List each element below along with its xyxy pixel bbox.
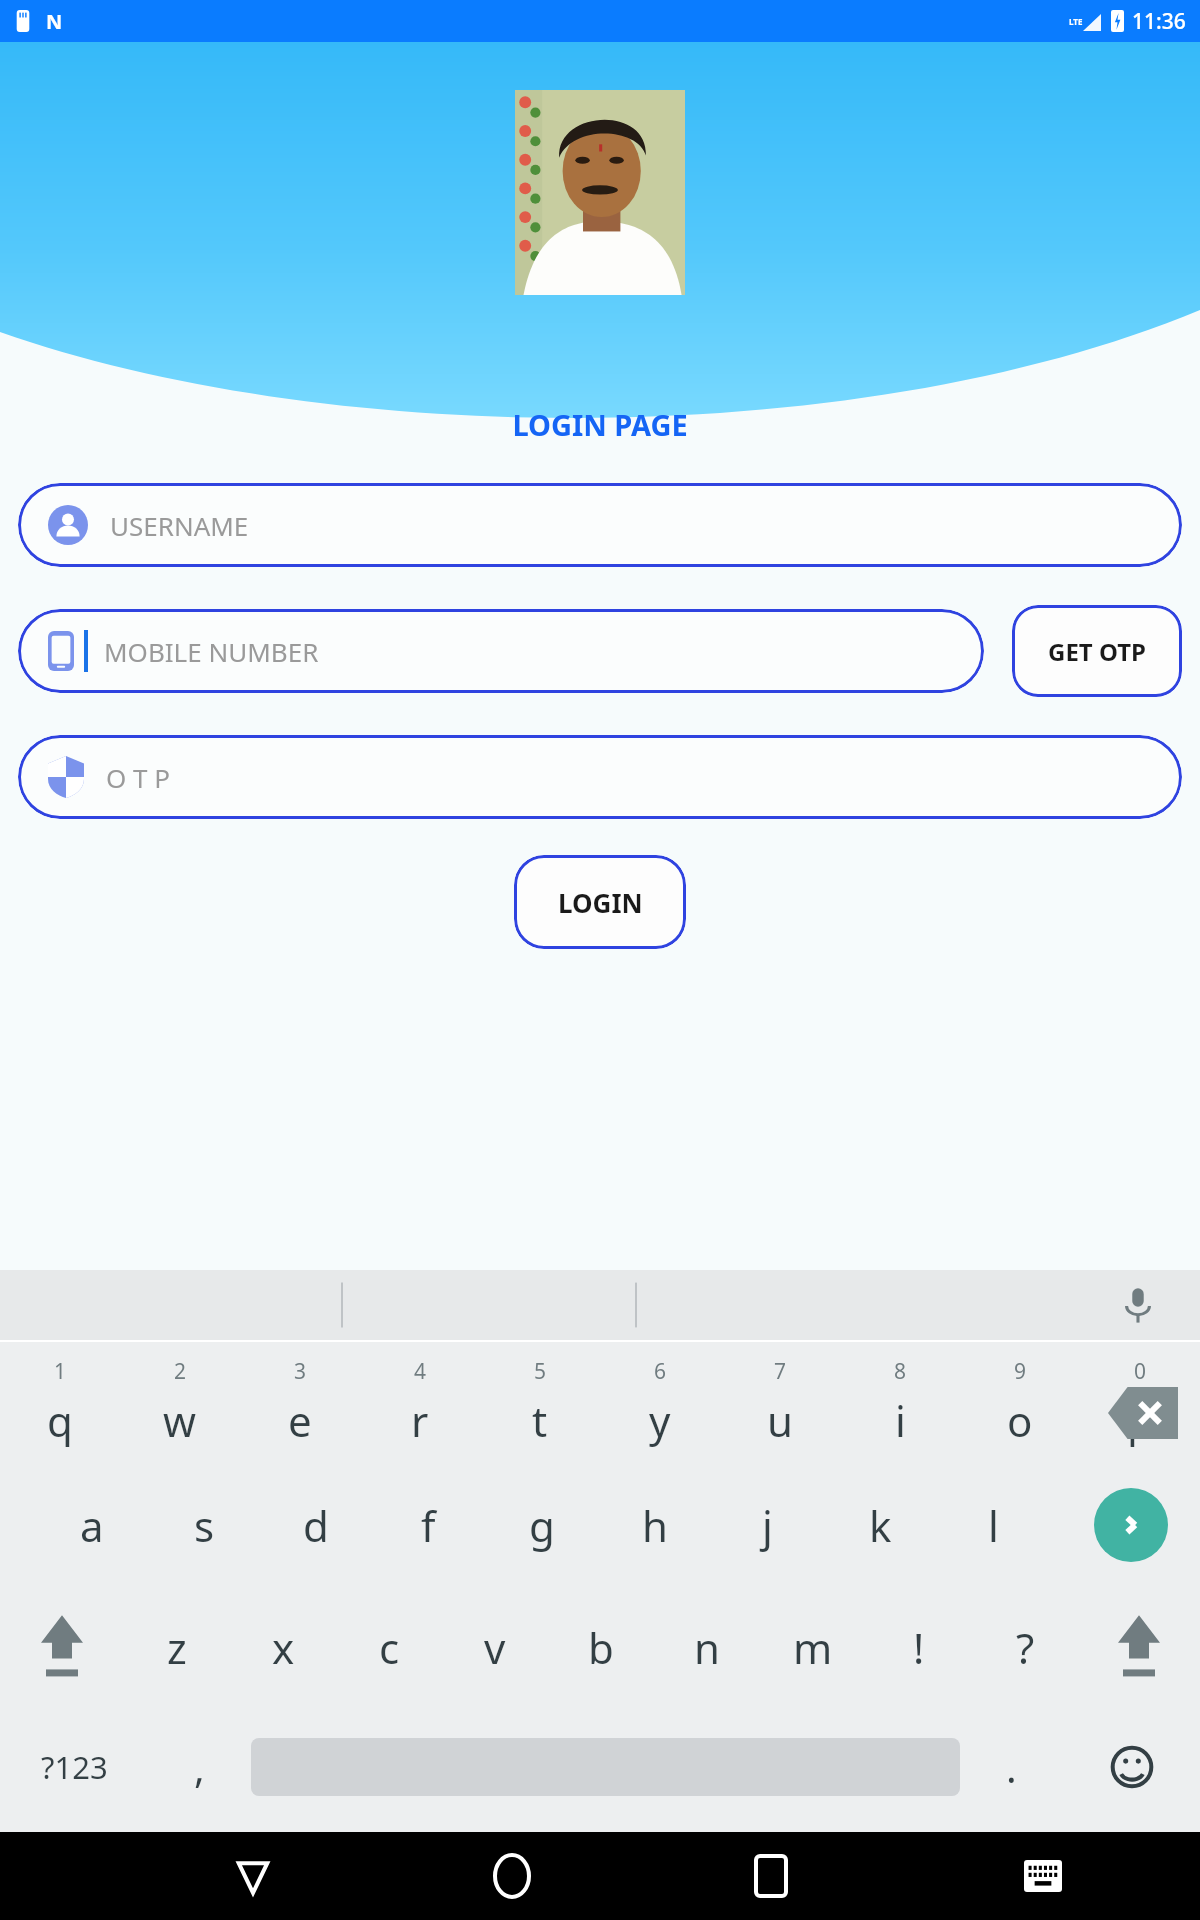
button[interactable]: n	[654, 1586, 760, 1708]
button[interactable]: 4	[360, 1342, 480, 1464]
button[interactable]: 1	[0, 1342, 120, 1464]
staticText: 4	[414, 1357, 427, 1386]
button[interactable]: !	[866, 1586, 972, 1708]
button[interactable]: a	[36, 1464, 148, 1586]
button[interactable]: Shift	[0, 1586, 123, 1708]
staticText: !	[913, 1619, 925, 1676]
staticText: a	[80, 1497, 104, 1554]
staticText: k	[869, 1497, 892, 1554]
staticText: q	[47, 1392, 73, 1449]
staticText: s	[194, 1497, 215, 1554]
button[interactable]: .	[960, 1708, 1063, 1826]
staticText: b	[588, 1619, 614, 1676]
button[interactable]: f	[372, 1464, 485, 1586]
staticText: u	[767, 1392, 793, 1449]
staticText: 9	[1014, 1357, 1027, 1386]
button[interactable]: Home	[479, 1843, 545, 1909]
button[interactable]: ?123	[0, 1708, 148, 1826]
staticText: O T P	[106, 760, 171, 795]
staticText: g	[529, 1497, 555, 1554]
staticText: i	[895, 1392, 906, 1449]
button[interactable]: Emoji	[1063, 1708, 1200, 1826]
staticText: r	[411, 1392, 429, 1449]
button[interactable]: Back	[220, 1843, 286, 1909]
staticText: y	[649, 1392, 671, 1449]
staticText: 0	[1134, 1357, 1147, 1386]
button[interactable]: 8	[840, 1342, 960, 1464]
button[interactable]: k	[824, 1464, 937, 1586]
staticText: d	[303, 1497, 329, 1554]
button[interactable]: Hide keyboard	[1010, 1843, 1076, 1909]
staticText: ,	[194, 1740, 205, 1794]
staticText: ?123	[41, 1746, 108, 1788]
staticText: 8	[894, 1357, 907, 1386]
staticText: LOGIN	[558, 885, 643, 920]
button[interactable]: j	[711, 1464, 824, 1586]
button[interactable]: 2	[120, 1342, 240, 1464]
button[interactable]: g	[485, 1464, 598, 1586]
staticText: GET OTP	[1048, 635, 1146, 668]
staticText: f	[421, 1497, 436, 1554]
staticText: x	[272, 1619, 295, 1676]
staticText: h	[642, 1497, 668, 1554]
staticText: .	[1006, 1740, 1017, 1794]
button[interactable]: x	[230, 1586, 336, 1708]
staticText: 7	[774, 1357, 787, 1386]
button[interactable]: Shift	[1078, 1586, 1200, 1708]
staticText: ?	[1016, 1619, 1035, 1676]
staticText: 11:36	[1132, 7, 1186, 36]
staticText: 1	[54, 1357, 67, 1386]
button[interactable]: ,	[148, 1708, 251, 1826]
button[interactable]: USERNAME	[18, 483, 1182, 567]
staticText: e	[288, 1392, 312, 1449]
button[interactable]: Voice input	[1116, 1283, 1160, 1327]
staticText: w	[163, 1392, 197, 1449]
staticText: v	[484, 1619, 506, 1676]
button[interactable]: Recent apps	[738, 1843, 804, 1909]
button[interactable]: GET OTP	[1012, 605, 1182, 697]
staticText: l	[988, 1497, 999, 1554]
button[interactable]: c	[336, 1586, 442, 1708]
staticText: j	[762, 1497, 773, 1554]
staticText: 3	[294, 1357, 307, 1386]
button[interactable]: b	[548, 1586, 654, 1708]
staticText: c	[379, 1619, 400, 1676]
button[interactable]: v	[442, 1586, 548, 1708]
staticText: 2	[174, 1357, 187, 1386]
staticText: z	[167, 1619, 187, 1676]
button[interactable]: Enter	[1094, 1488, 1168, 1562]
button[interactable]: 7	[720, 1342, 840, 1464]
staticText: 5	[534, 1357, 547, 1386]
staticText: 6	[654, 1357, 667, 1386]
button[interactable]: LOGIN	[514, 855, 686, 949]
staticText: LOGIN PAGE	[512, 405, 688, 444]
button[interactable]: d	[260, 1464, 372, 1586]
staticText: n	[694, 1619, 720, 1676]
button[interactable]: 5	[480, 1342, 600, 1464]
button[interactable]: Backspace	[1108, 1387, 1178, 1439]
staticText: MOBILE NUMBER	[104, 634, 319, 669]
button[interactable]: 9	[960, 1342, 1080, 1464]
button[interactable]: 6	[600, 1342, 720, 1464]
button[interactable]: 3	[240, 1342, 360, 1464]
button[interactable]: m	[760, 1586, 866, 1708]
staticText: o	[1007, 1392, 1033, 1449]
staticText: p	[1127, 1392, 1153, 1449]
staticText: t	[532, 1392, 548, 1449]
button[interactable]: z	[123, 1586, 230, 1708]
button[interactable]: MOBILE NUMBER	[18, 609, 984, 693]
staticText: LTE	[1069, 16, 1083, 27]
staticText: m	[793, 1619, 833, 1676]
button[interactable]: h	[598, 1464, 711, 1586]
button[interactable]: ?	[972, 1586, 1078, 1708]
button[interactable]: l	[937, 1464, 1050, 1586]
button[interactable]: 0	[1080, 1342, 1200, 1464]
staticText: USERNAME	[110, 508, 249, 543]
button[interactable]: O T P	[18, 735, 1182, 819]
button[interactable]: s	[148, 1464, 260, 1586]
staticText: N	[46, 8, 63, 35]
